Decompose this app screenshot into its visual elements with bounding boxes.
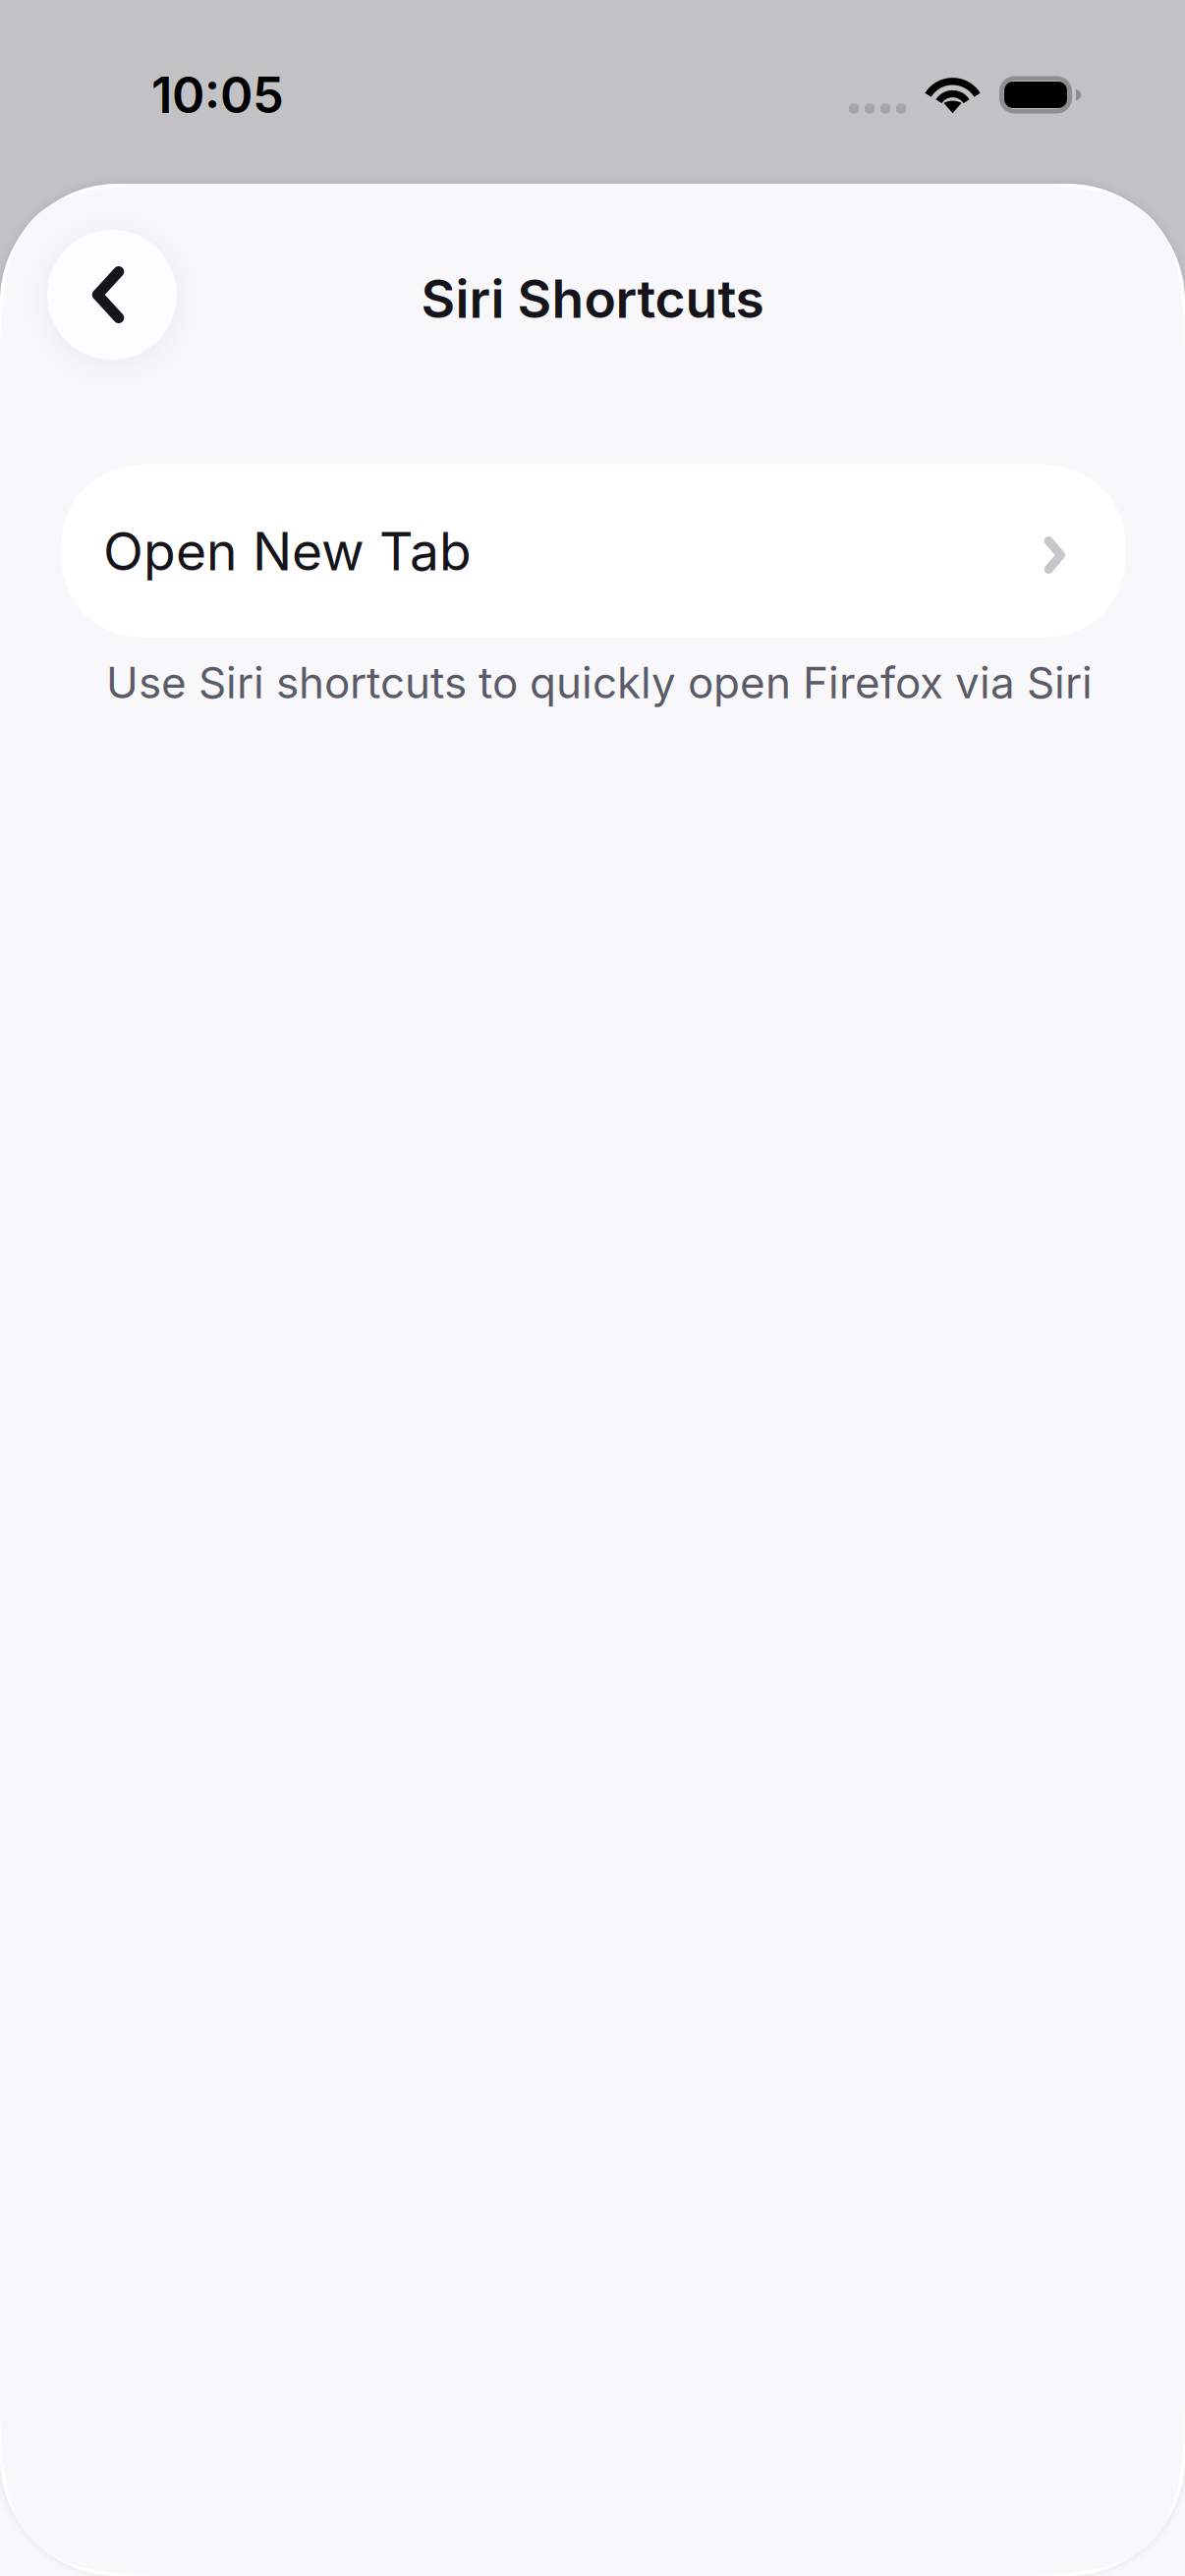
- staticText: Siri Shortcuts: [421, 267, 764, 330]
- staticText: Open New Tab: [103, 519, 472, 583]
- staticText: 10:05: [151, 65, 284, 125]
- staticText: Use Siri shortcuts to quickly open Firef…: [106, 656, 1093, 709]
- button[interactable]: Open New Tab: [61, 465, 1126, 638]
- button[interactable]: Back: [47, 230, 177, 360]
